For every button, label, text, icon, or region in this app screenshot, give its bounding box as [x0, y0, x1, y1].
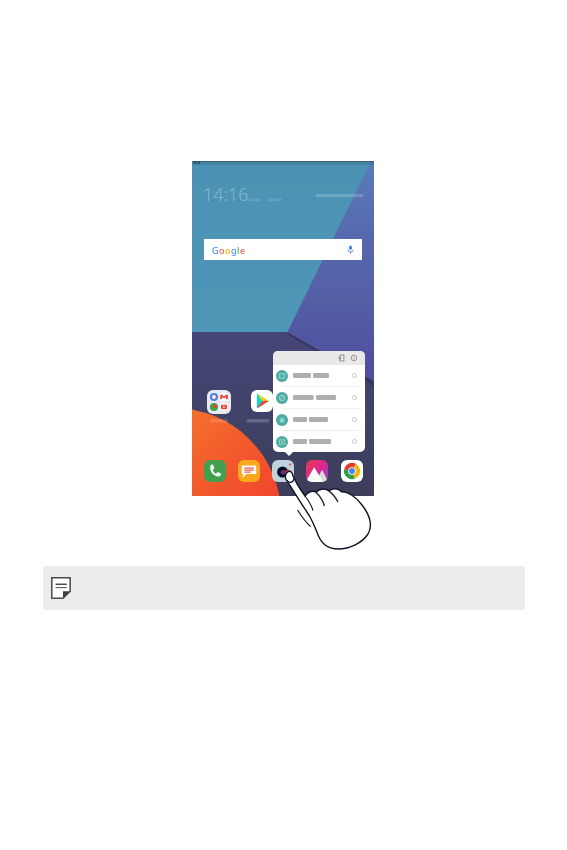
staticText: G	[212, 244, 219, 256]
other: Voice search	[345, 244, 356, 255]
button[interactable]: Manual Video	[273, 365, 365, 386]
staticText: l	[237, 244, 240, 256]
button[interactable]: Photos	[306, 460, 328, 482]
button[interactable]: Google search	[204, 239, 362, 260]
staticText: o	[225, 244, 231, 256]
staticText: o	[219, 244, 225, 256]
button[interactable]: Phone	[204, 460, 226, 482]
staticText: 14:16	[203, 182, 249, 207]
button[interactable]: Edit shortcut	[338, 355, 344, 361]
button[interactable]: Chrome	[341, 460, 363, 482]
button[interactable]: Camera	[272, 460, 294, 482]
button[interactable]: Messages	[238, 460, 260, 482]
button[interactable]: App info	[351, 355, 357, 361]
button[interactable]: Play Store	[251, 390, 273, 412]
button[interactable]: Pop Screen	[273, 409, 365, 430]
staticText: e	[240, 244, 246, 256]
button[interactable]: Google folder	[207, 390, 231, 414]
staticText: g	[231, 244, 237, 256]
button[interactable]: Wide Camera	[273, 431, 365, 452]
button[interactable]: Manual Camera	[273, 387, 365, 408]
